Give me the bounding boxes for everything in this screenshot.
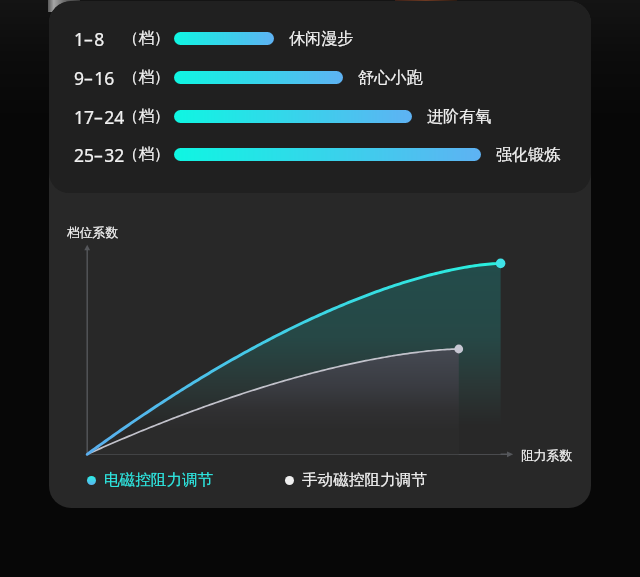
button[interactable]: 17–24 xyxy=(65,100,575,134)
staticText: 1–8 xyxy=(74,27,105,51)
button[interactable]: 25–32 xyxy=(65,138,575,172)
button[interactable]: 电磁控阻力调节 xyxy=(79,468,222,492)
button[interactable]: 手动磁控阻力调节 xyxy=(277,468,435,492)
staticText: （档） xyxy=(123,67,170,87)
staticText: 强化锻炼 xyxy=(496,144,561,164)
staticText: 舒心小跑 xyxy=(358,67,423,87)
staticText: 9–16 xyxy=(74,66,115,90)
staticText: 电磁控阻力调节 xyxy=(104,470,214,490)
staticText: 休闲漫步 xyxy=(289,28,354,48)
staticText: （档） xyxy=(123,106,170,126)
staticText: 手动磁控阻力调节 xyxy=(302,470,427,490)
staticText: 17–24 xyxy=(74,105,125,129)
staticText: （档） xyxy=(123,144,170,164)
button[interactable]: 9–16 xyxy=(65,61,575,95)
staticText: （档） xyxy=(123,28,170,48)
staticText: 档位系数 xyxy=(67,225,119,241)
other: 阻力系数与档位系数曲线图 xyxy=(49,1,591,508)
staticText: 25–32 xyxy=(74,143,125,167)
staticText: 进阶有氧 xyxy=(427,106,492,126)
staticText: 阻力系数 xyxy=(521,448,573,464)
button[interactable]: 1–8 xyxy=(65,22,575,56)
